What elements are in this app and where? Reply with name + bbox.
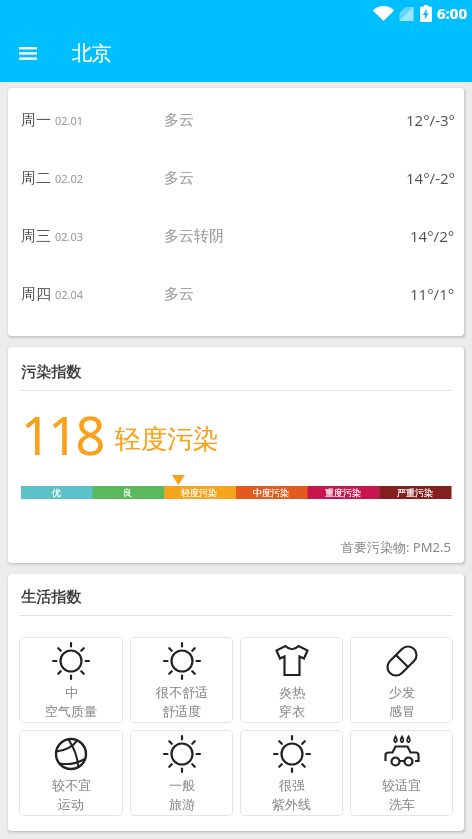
staticText: 多云 xyxy=(164,169,194,188)
staticText: 较适宜 xyxy=(382,777,421,793)
staticText: 轻度污染 xyxy=(115,423,219,456)
staticText: 中度污染 xyxy=(253,487,289,498)
staticText: 首要污染物: PM2.5 xyxy=(341,538,451,556)
staticText: 良 xyxy=(123,487,132,498)
staticText: 运动 xyxy=(58,796,84,812)
staticText: 空气质量 xyxy=(45,703,97,719)
staticText: 14°/-2° xyxy=(406,168,455,188)
staticText: 周二 xyxy=(21,169,51,188)
staticText: 多云转阴 xyxy=(164,227,224,246)
staticText: 一般 xyxy=(169,777,195,793)
staticText: 舒适度 xyxy=(162,703,201,719)
staticText: 很不舒适 xyxy=(156,684,208,700)
staticText: 少发 xyxy=(389,684,415,700)
staticText: 重度污染 xyxy=(325,487,361,498)
staticText: 很强 xyxy=(279,777,305,793)
staticText: 11°/1° xyxy=(410,284,455,304)
staticText: 较不宜 xyxy=(52,777,91,793)
staticText: 6:00 xyxy=(437,3,467,23)
staticText: 多云 xyxy=(164,111,194,130)
staticText: 周一 xyxy=(21,111,51,130)
staticText: 12°/-3° xyxy=(406,110,455,130)
button[interactable]: 很不舒适 xyxy=(130,637,233,723)
button[interactable]: 中 xyxy=(19,637,123,723)
button[interactable] xyxy=(0,26,56,82)
button[interactable]: 较不宜 xyxy=(19,730,123,816)
staticText: 北京 xyxy=(72,41,112,66)
staticText: 洗车 xyxy=(389,796,415,812)
staticText: 感冒 xyxy=(389,703,415,719)
staticText: 周四 xyxy=(21,285,51,304)
button[interactable]: 炎热 xyxy=(240,637,343,723)
staticText: 02.03 xyxy=(55,229,84,244)
staticText: 炎热 xyxy=(279,684,305,700)
staticText: 多云 xyxy=(164,285,194,304)
staticText: 紫外线 xyxy=(272,796,311,812)
staticText: 02.04 xyxy=(55,287,84,302)
button[interactable]: 少发 xyxy=(350,637,453,723)
button[interactable]: 周一 xyxy=(21,91,455,149)
staticText: 优 xyxy=(52,487,61,498)
button[interactable]: 周二 xyxy=(21,149,455,207)
staticText: 穿衣 xyxy=(279,703,305,719)
staticText: 生活指数 xyxy=(21,588,81,607)
staticText: 严重污染 xyxy=(397,487,433,498)
button[interactable]: 一般 xyxy=(130,730,233,816)
staticText: 中 xyxy=(65,684,78,700)
staticText: 02.01 xyxy=(55,113,84,128)
staticText: 14°/2° xyxy=(410,226,455,246)
staticText: 周三 xyxy=(21,227,51,246)
button[interactable]: 很强 xyxy=(240,730,343,816)
staticText: 轻度污染 xyxy=(181,487,217,498)
staticText: 旅游 xyxy=(169,796,195,812)
staticText: 污染指数 xyxy=(21,363,81,382)
button[interactable]: 周四 xyxy=(21,265,455,323)
staticText: 118 xyxy=(21,399,103,470)
staticText: 02.02 xyxy=(55,171,84,186)
button[interactable]: 较适宜 xyxy=(350,730,453,816)
button[interactable]: 周三 xyxy=(21,207,455,265)
